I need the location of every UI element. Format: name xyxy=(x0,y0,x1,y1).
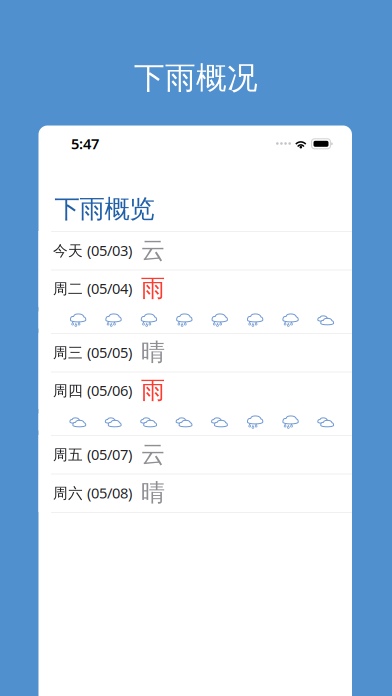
staticText: 雨 xyxy=(141,273,165,303)
button[interactable]: 周四 (05/06) xyxy=(38,371,352,409)
button[interactable]: 周二 (05/04) xyxy=(38,269,352,307)
button[interactable]: 周六 (05/08) xyxy=(38,473,352,512)
staticText: 云 xyxy=(141,235,165,265)
staticText: 5:47 xyxy=(71,134,99,153)
staticText: 周五 (05/07) xyxy=(53,444,132,464)
staticText: 今天 (05/03) xyxy=(53,240,132,260)
staticText: 晴 xyxy=(141,337,165,367)
staticText: 雨 xyxy=(141,375,165,405)
staticText: 周四 (05/06) xyxy=(53,380,132,400)
button[interactable]: 周三 (05/05) xyxy=(38,333,352,371)
staticText: 周二 (05/04) xyxy=(53,278,132,298)
staticText: 晴 xyxy=(141,478,165,507)
staticText: 云 xyxy=(141,439,165,469)
staticText: 下雨概览 xyxy=(54,193,154,224)
staticText: 下雨概况 xyxy=(134,59,258,97)
button[interactable]: 周五 (05/07) xyxy=(38,435,352,473)
staticText: 周三 (05/05) xyxy=(53,342,132,362)
staticText: 周六 (05/08) xyxy=(53,483,132,502)
button[interactable]: 今天 (05/03) xyxy=(38,231,352,269)
